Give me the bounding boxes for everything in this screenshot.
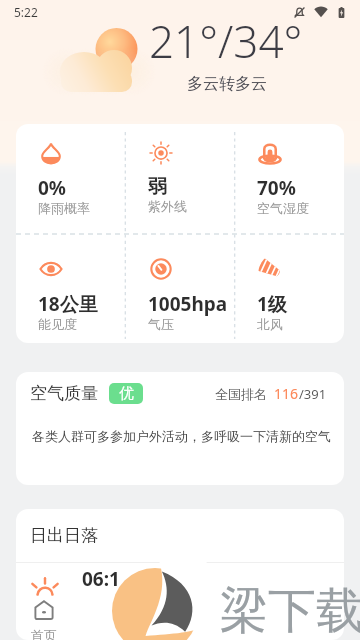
staticText: 气压 bbox=[148, 316, 174, 332]
staticText: 北风 bbox=[257, 316, 283, 332]
staticText: 1级 bbox=[257, 291, 287, 317]
staticText: 全国排名 bbox=[215, 386, 267, 402]
staticText: 1005hpa bbox=[148, 291, 228, 317]
staticText: 首页 bbox=[31, 627, 57, 640]
staticText: 梁下载 bbox=[220, 581, 360, 640]
button[interactable]: 70% bbox=[235, 124, 344, 234]
button[interactable]: 1级 bbox=[235, 234, 344, 343]
staticText: 70% bbox=[257, 175, 296, 201]
button[interactable]: 0% bbox=[16, 124, 126, 234]
button[interactable]: 空气质量 bbox=[16, 372, 344, 485]
staticText: 空气质量 bbox=[30, 383, 98, 404]
staticText: 21°/34° bbox=[149, 11, 303, 71]
button[interactable]: 弱 bbox=[126, 124, 235, 234]
staticText: 能见度 bbox=[38, 316, 77, 332]
staticText: /391 bbox=[299, 385, 327, 403]
staticText: 5:22 bbox=[14, 4, 38, 20]
button[interactable]: 首页 bbox=[0, 590, 88, 640]
staticText: 0% bbox=[38, 175, 67, 201]
staticText: 日出日落 bbox=[30, 525, 98, 546]
staticText: 多云转多云 bbox=[187, 74, 267, 94]
staticText: 紫外线 bbox=[148, 198, 187, 214]
staticText: 各类人群可多参加户外活动，多呼吸一下清新的空气 bbox=[32, 428, 331, 444]
staticText: 空气湿度 bbox=[257, 200, 309, 216]
staticText: 降雨概率 bbox=[38, 200, 90, 216]
staticText: 06:1 bbox=[82, 566, 120, 592]
button[interactable]: 1005hpa bbox=[126, 234, 235, 343]
staticText: 弱 bbox=[148, 175, 167, 199]
staticText: 116 bbox=[274, 384, 299, 403]
button[interactable]: 18公里 bbox=[16, 234, 126, 343]
staticText: 18公里 bbox=[38, 291, 98, 317]
staticText: 优 bbox=[119, 384, 134, 403]
